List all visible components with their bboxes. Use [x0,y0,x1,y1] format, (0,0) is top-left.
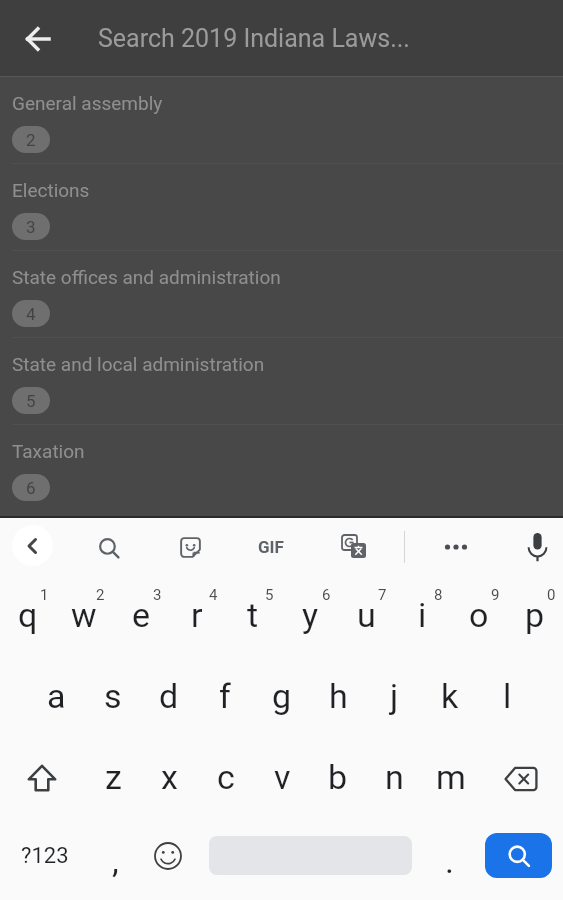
staticText: w [71,595,97,635]
staticText: i [418,595,427,635]
button[interactable]: r [169,576,225,657]
button[interactable]: g [254,657,310,738]
button[interactable]: l [479,657,535,738]
button[interactable] [14,15,62,63]
button[interactable]: x [141,738,197,819]
staticText: 9 [491,586,500,604]
button[interactable]: w [56,576,112,657]
button[interactable]: f [197,657,253,738]
staticText: 2 [26,130,36,150]
staticText: 4 [26,304,36,324]
staticText: z [105,757,122,797]
staticText: d [159,676,179,716]
staticText: 5 [265,586,274,604]
button[interactable]: General assembly [0,77,563,164]
button[interactable]: State offices and administration [0,251,563,338]
button[interactable]: s [85,657,141,738]
button[interactable]: z [85,738,141,819]
staticText: e [132,595,151,635]
staticText: 7 [378,586,387,604]
staticText: h [329,676,348,716]
button[interactable]: n [366,738,422,819]
button[interactable]: e [113,576,169,657]
staticText: 5 [26,391,36,411]
button[interactable]: d [141,657,197,738]
staticText: a [47,676,66,716]
staticText: q [18,595,38,635]
button[interactable]: u [338,576,394,657]
button[interactable]: v [254,738,310,819]
staticText: n [385,757,404,797]
button[interactable]: t [225,576,281,657]
staticText: v [274,757,291,797]
staticText: GIF [258,537,284,557]
staticText: State offices and administration [12,266,281,288]
button[interactable]: a [28,657,84,738]
staticText: Elections [12,179,90,201]
button[interactable]: GIF [247,523,295,571]
button[interactable] [432,523,480,571]
button[interactable]: ?123 [8,825,82,886]
staticText: s [104,676,122,716]
staticText: 8 [434,586,443,604]
button[interactable]: Elections [0,164,563,251]
staticText: 6 [322,586,331,604]
staticText: 4 [209,586,218,604]
staticText: . [445,841,454,881]
button[interactable]: h [310,657,366,738]
button[interactable] [330,523,378,571]
button[interactable]: i [394,576,450,657]
button[interactable] [513,523,561,571]
staticText: c [217,757,235,797]
staticText: o [469,595,489,635]
staticText: General assembly [12,92,163,114]
staticText: y [302,595,319,635]
staticText: m [436,757,466,797]
button[interactable]: . [421,825,477,886]
staticText: 0 [547,586,556,604]
staticText: p [525,595,545,635]
staticText: State and local administration [12,353,265,375]
button[interactable]: k [422,657,478,738]
staticText: 3 [26,217,36,237]
staticText: Taxation [12,440,85,462]
button[interactable]: j [366,657,422,738]
button[interactable]: b [310,738,366,819]
button[interactable]: q [0,576,56,657]
button[interactable]: o [451,576,507,657]
button[interactable] [140,825,196,886]
staticText: u [357,595,376,635]
staticText: ?123 [21,843,69,869]
staticText: r [191,595,203,635]
button[interactable]: p [507,576,563,657]
staticText: l [503,676,512,716]
button[interactable]: State and local administration [0,338,563,425]
button[interactable] [485,833,552,878]
staticText: 6 [26,478,36,498]
staticText: , [112,841,119,881]
button[interactable]: y [282,576,338,657]
staticText: 2 [96,586,105,604]
staticText: x [161,757,178,797]
button[interactable]: , [87,825,143,886]
staticText: b [328,757,348,797]
button[interactable]: c [198,738,254,819]
staticText: 3 [153,586,162,604]
staticText: j [390,676,399,716]
staticText: Search 2019 Indiana Laws... [98,24,410,53]
staticText: k [441,676,459,716]
button[interactable] [166,523,214,571]
staticText: 1 [40,586,49,604]
button[interactable] [8,748,76,809]
button[interactable] [84,523,132,571]
staticText: t [247,595,259,635]
button[interactable]: m [423,738,479,819]
staticText: g [272,676,292,716]
button[interactable] [484,748,554,809]
staticText: f [219,676,231,716]
button[interactable]: Taxation [0,425,563,512]
button[interactable] [12,525,53,566]
